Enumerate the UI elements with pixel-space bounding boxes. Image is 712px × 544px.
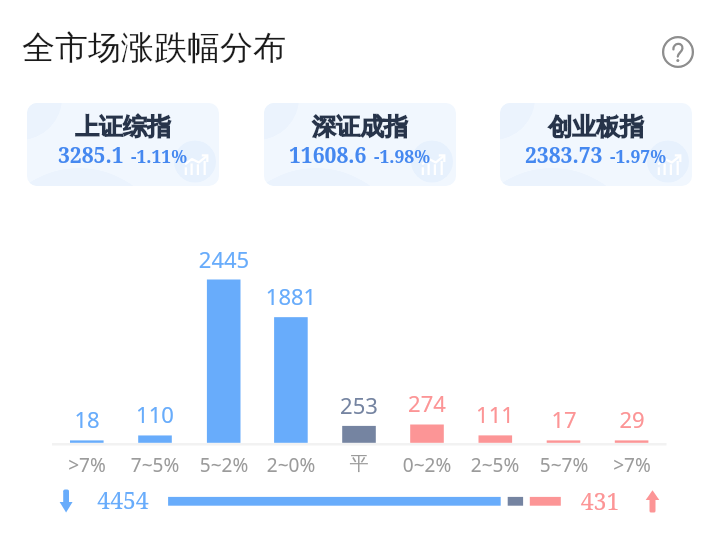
button[interactable]: 上证综指 <box>27 103 219 186</box>
staticText: -1.11% <box>131 144 188 168</box>
staticText: 平 <box>314 452 404 476</box>
staticText: 全市场涨跌幅分布 <box>22 27 286 69</box>
button[interactable]: 深证成指 <box>264 103 456 186</box>
staticText: 110 <box>115 399 195 429</box>
staticText: 29 <box>592 404 672 434</box>
button[interactable]: Help <box>660 34 696 70</box>
staticText: >7% <box>587 452 677 478</box>
staticText: 3285.1 <box>58 141 124 170</box>
staticText: 创业板指 <box>500 112 692 186</box>
staticText: -1.97% <box>610 144 667 168</box>
staticText: 2445 <box>184 244 264 274</box>
staticText: 111 <box>455 399 535 429</box>
staticText: -1.98% <box>374 144 431 168</box>
staticText: 5~2% <box>179 452 269 478</box>
staticText: 18 <box>47 404 127 434</box>
staticText: >7% <box>42 452 132 478</box>
staticText: 2383.73 <box>525 141 603 170</box>
staticText: 4454 <box>95 484 151 515</box>
staticText: 1881 <box>251 281 331 311</box>
staticText: 11608.6 <box>289 141 367 170</box>
staticText: 5~7% <box>519 452 609 478</box>
button[interactable]: 创业板指 <box>500 103 692 186</box>
staticText: 17 <box>524 404 604 434</box>
staticText: 0~2% <box>382 452 472 478</box>
staticText: 431 <box>578 485 622 516</box>
staticText: 上证综指 <box>27 112 219 186</box>
button[interactable]: 涨跌家数统计 4454 下跌 431 上涨 <box>52 484 667 518</box>
staticText: 274 <box>387 388 467 418</box>
staticText: 7~5% <box>110 452 200 478</box>
staticText: 253 <box>319 390 399 420</box>
staticText: 2~0% <box>246 452 336 478</box>
staticText: 2~5% <box>450 452 540 478</box>
staticText: 深证成指 <box>264 112 456 186</box>
